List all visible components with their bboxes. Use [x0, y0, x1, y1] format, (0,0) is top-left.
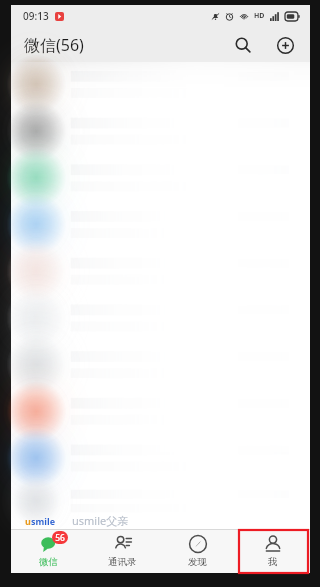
staticText: 我 [268, 556, 278, 568]
staticText: 发现 [188, 556, 207, 568]
staticText: 56 [55, 532, 65, 544]
staticText: 09:13 [23, 9, 49, 23]
staticText: HD [254, 11, 265, 21]
staticText: u [25, 515, 31, 527]
button[interactable]: 通讯录 [85, 529, 160, 573]
button[interactable]: 56 [11, 529, 85, 573]
button[interactable]: u [11, 512, 310, 529]
button[interactable]: 我 [235, 529, 310, 573]
staticText: 微信 [39, 556, 58, 568]
button[interactable]: Search [230, 32, 256, 58]
staticText: 通讯录 [108, 556, 137, 568]
button[interactable]: 发现 [160, 529, 235, 573]
staticText: usmile父亲 [72, 513, 129, 528]
staticText: smile [31, 515, 56, 527]
button[interactable]: Add [272, 32, 298, 58]
staticText: 微信(56) [24, 34, 84, 56]
